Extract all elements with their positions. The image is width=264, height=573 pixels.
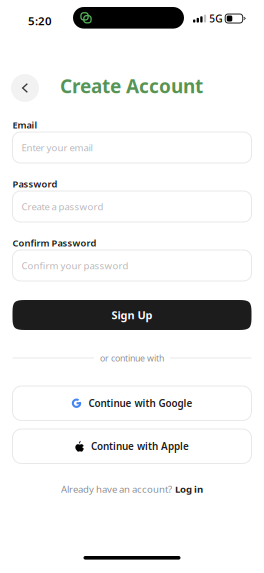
staticText: Continue with Google (88, 397, 192, 410)
staticText: Create Account (60, 73, 203, 98)
staticText: 5G (209, 12, 222, 25)
staticText: Continue with Apple (91, 440, 189, 453)
staticText: Create a password (21, 200, 103, 213)
staticText: Email (12, 119, 37, 131)
staticText: Already have an account? (61, 483, 172, 495)
staticText: or continue with (100, 352, 164, 364)
button[interactable]: Sign Up (12, 300, 251, 330)
button[interactable]: Back (11, 74, 39, 102)
staticText: Log in (175, 483, 203, 495)
staticText: Sign Up (111, 308, 152, 322)
staticText: Confirm Password (12, 237, 96, 249)
staticText: Enter your email (21, 141, 92, 154)
staticText: 5:20 (28, 13, 52, 28)
button[interactable]: Continue with Google (12, 386, 251, 420)
button[interactable]: Continue with Apple (12, 429, 251, 463)
staticText: Password (12, 178, 57, 190)
staticText: Confirm your password (21, 259, 128, 272)
button[interactable]: Already have an account? (0, 482, 264, 496)
